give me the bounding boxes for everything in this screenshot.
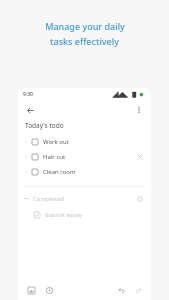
button[interactable]: Redo — [132, 284, 144, 296]
button[interactable]: Remove Hair cut — [135, 152, 145, 162]
button[interactable]: More options — [132, 103, 146, 117]
button[interactable]: Set reminder — [43, 284, 55, 296]
staticText: Completed — [33, 195, 64, 203]
button[interactable]: Clean room — [18, 164, 151, 179]
button[interactable]: Work out — [18, 134, 151, 149]
staticText: Submit essay — [45, 211, 83, 219]
staticText: Work out — [43, 138, 69, 146]
button[interactable]: Completed settings — [135, 194, 145, 204]
button[interactable]: Undo — [115, 284, 127, 296]
button[interactable]: Completed — [18, 192, 151, 205]
staticText: 9:30 — [23, 91, 33, 98]
button[interactable]: Hair cut — [18, 149, 151, 164]
button[interactable]: Add image — [25, 284, 37, 296]
button[interactable]: Back — [23, 103, 37, 117]
staticText: Today's todo — [25, 121, 64, 130]
staticText: tasks effectively — [50, 35, 119, 47]
staticText: Hair cut — [43, 153, 66, 161]
button[interactable]: Submit essay — [18, 208, 151, 222]
staticText: Manage your daily — [45, 20, 125, 32]
staticText: Clean room — [43, 168, 76, 176]
